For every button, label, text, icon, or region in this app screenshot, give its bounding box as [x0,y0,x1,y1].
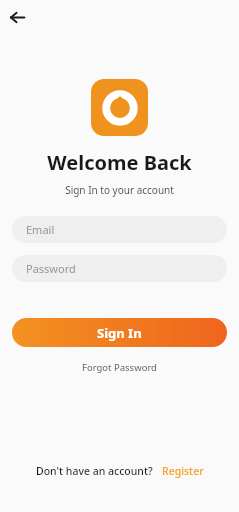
button[interactable]: Back [2,2,32,32]
staticText: Sign In [97,324,142,342]
button[interactable]: Email [12,216,227,243]
button[interactable]: Password [12,255,227,282]
button[interactable]: Forgot Password [76,359,163,376]
staticText: Password [26,261,76,276]
staticText: Forgot Password [82,361,157,374]
staticText: Sign In to your account [65,183,174,197]
button[interactable]: Sign In [12,318,227,347]
button[interactable]: Register [162,464,204,478]
staticText: Email [26,222,55,237]
staticText: Register [162,464,204,478]
staticText: Don't have an account? [36,464,153,478]
staticText: Welcome Back [47,149,192,176]
